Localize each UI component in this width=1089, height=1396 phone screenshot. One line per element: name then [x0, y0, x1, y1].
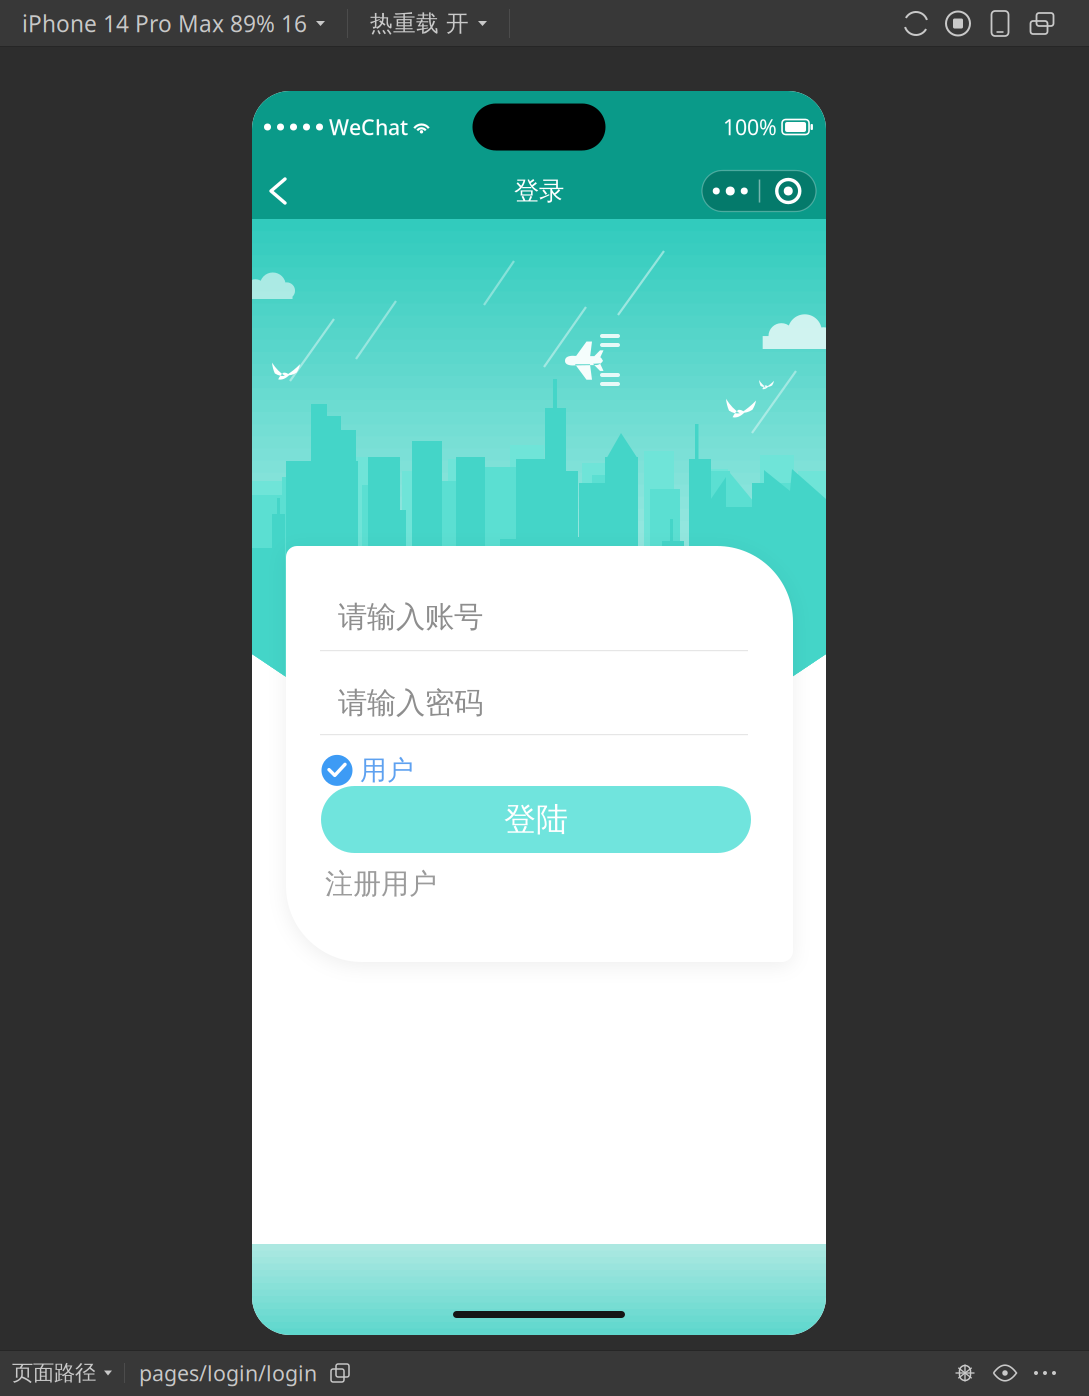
button[interactable]: Mini program menu	[702, 170, 816, 211]
staticText: pages/login/login	[139, 1359, 317, 1387]
button[interactable]: Device	[979, 2, 1021, 44]
button[interactable]: 热重载 开	[348, 0, 509, 47]
staticText: iPhone 14 Pro Max 89% 16	[22, 8, 307, 38]
staticText: 页面路径	[12, 1360, 96, 1386]
staticText: WeChat	[329, 113, 408, 141]
button[interactable]: 请输入账号	[320, 594, 766, 640]
staticText: 登陆	[504, 800, 568, 839]
staticText: 登录	[514, 175, 564, 206]
button[interactable]: Back	[255, 166, 301, 216]
staticText: 请输入账号	[338, 599, 483, 635]
button[interactable]: 页面路径	[0, 1350, 124, 1396]
button[interactable]: 注册用户	[325, 867, 437, 901]
button[interactable]: Stop	[937, 2, 979, 44]
staticText: 请输入密码	[338, 685, 483, 721]
button[interactable]: Detach simulator	[1021, 2, 1063, 44]
button[interactable]: Debug	[945, 1353, 985, 1393]
button[interactable]: iPhone 14 Pro Max 89% 16	[0, 0, 347, 47]
button[interactable]: Preview	[985, 1353, 1025, 1393]
staticText: 注册用户	[325, 867, 437, 901]
button[interactable]: 请输入密码	[320, 680, 766, 726]
button[interactable]: Recompile	[895, 2, 937, 44]
staticText: 热重载 开	[370, 10, 469, 37]
button[interactable]: More options	[1025, 1353, 1065, 1393]
button[interactable]: Copy page path	[325, 1358, 355, 1388]
staticText: 100%	[723, 113, 777, 141]
staticText: 用户	[360, 754, 414, 787]
button[interactable]: 登陆	[321, 786, 751, 853]
button[interactable]: 用户	[322, 754, 414, 787]
